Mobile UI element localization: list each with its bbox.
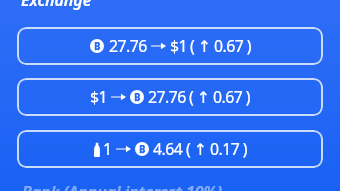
button[interactable]: 1 dollar to Bitcoin 27.76, up 0.67 [17,78,323,116]
staticText: 27.76 [148,86,186,108]
staticText: ( ↑ 0.67 ) [189,86,250,108]
staticText: $1 [170,35,187,57]
staticText: ( ↑ 0.17 ) [186,138,247,160]
staticText: 27.76 [109,35,147,57]
staticText: 4.64 [153,138,183,160]
staticText: $1 [90,86,107,108]
staticText: B [94,40,101,53]
staticText: B [134,91,141,104]
staticText: Exchange [21,0,92,11]
staticText: ( ↑ 0.67 ) [190,35,251,57]
staticText: B [139,143,146,156]
staticText: 1 [103,138,112,160]
button[interactable]: Oil 1 to Bitcoin 4.64, up 0.17 [17,130,323,168]
staticText: Bank (Annual interest 10%) [22,181,223,191]
button[interactable]: Bitcoin 27.76 to 1 dollar, up 0.67 [17,27,323,65]
